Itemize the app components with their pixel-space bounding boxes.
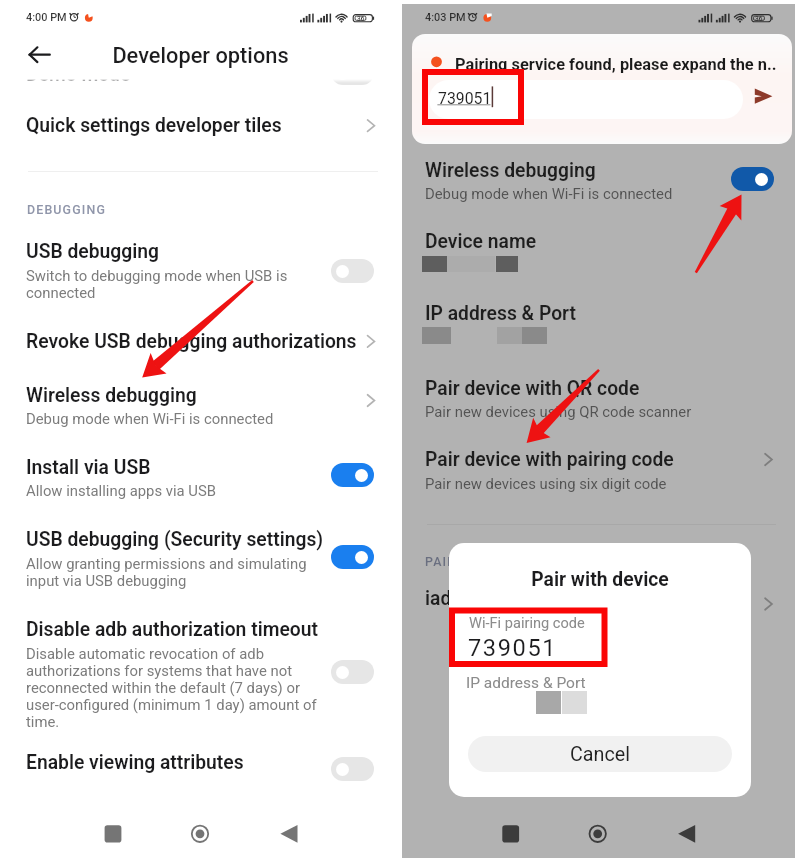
- button[interactable]: IP address & Port: [402, 292, 795, 354]
- button[interactable]: Back: [669, 817, 705, 851]
- button[interactable]: Revoke USB debugging authorizations: [0, 315, 401, 367]
- staticText: Device name: [425, 230, 800, 253]
- button[interactable]: Device name: [402, 220, 795, 282]
- button[interactable]: Quick settings developer tiles: [0, 96, 401, 148]
- staticText: Wireless debugging: [425, 159, 800, 182]
- button[interactable]: Install via USB: [331, 463, 374, 487]
- staticText: authorizations for systems that have not: [26, 662, 427, 679]
- staticText: IP address & Port: [425, 302, 800, 325]
- staticText: Developer options: [0, 43, 401, 69]
- staticText: USB debugging: [26, 240, 427, 263]
- staticText: Wireless debugging: [26, 384, 427, 407]
- staticText: DEBUGGING: [27, 202, 627, 217]
- staticText: Enable viewing attributes: [26, 751, 427, 774]
- button[interactable]: Cancel: [468, 736, 732, 772]
- button[interactable]: Recent apps: [95, 817, 131, 851]
- button[interactable]: Install via USB: [0, 441, 401, 510]
- staticText: Debug mode when Wi-Fi is connected: [425, 185, 800, 202]
- staticText: 739051: [468, 634, 800, 662]
- button[interactable]: Send: [748, 82, 778, 112]
- staticText: 4:00 PM: [26, 11, 626, 24]
- staticText: Wi-Fi pairing code: [469, 614, 800, 631]
- staticText: PAIRED DEVICES: [425, 554, 800, 569]
- button[interactable]: Back: [271, 817, 307, 851]
- staticText: Demo mode: [26, 63, 626, 86]
- staticText: IP address & Port: [466, 674, 800, 692]
- button[interactable]: Wireless debugging: [402, 148, 795, 212]
- button[interactable]: Recent apps: [493, 817, 529, 851]
- button[interactable]: Disable adb authorization timeout: [331, 660, 374, 684]
- staticText: Pairing service found, please expand the…: [455, 55, 800, 74]
- staticText: Debug mode when Wi-Fi is connected: [26, 410, 427, 427]
- staticText: time.: [26, 713, 427, 730]
- button[interactable]: USB debugging security settings: [331, 545, 374, 569]
- staticText: Revoke USB debugging authorizations: [26, 330, 427, 353]
- button[interactable]: Pair device with pairing code: [402, 438, 795, 500]
- staticText: reconnected within the default (7 days) …: [26, 679, 427, 696]
- staticText: Pair device with QR code: [425, 377, 800, 400]
- staticText: Disable automatic revocation of adb: [26, 645, 427, 662]
- staticText: Allow installing apps via USB: [26, 482, 427, 499]
- staticText: user-configured (minimum 1 day) amount o…: [26, 696, 427, 713]
- staticText: 739051: [438, 89, 743, 108]
- staticText: Quick settings developer tiles: [26, 114, 427, 137]
- staticText: Pair with device: [449, 568, 751, 591]
- button[interactable]: Pair device with QR code: [402, 366, 795, 428]
- staticText: Disable adb authorization timeout: [26, 618, 427, 641]
- button[interactable]: Demo mode: [331, 61, 374, 85]
- button[interactable]: Wireless debugging: [731, 167, 774, 191]
- button[interactable]: Disable adb authorization timeout: [0, 603, 401, 731]
- button[interactable]: USB debugging: [331, 259, 374, 283]
- button[interactable]: USB debugging: [0, 228, 401, 306]
- staticText: Pair new devices using six digit code: [425, 475, 800, 492]
- staticText: 36: [357, 15, 800, 23]
- staticText: 4:03 PM: [425, 11, 800, 24]
- button[interactable]: 739051: [429, 80, 743, 119]
- staticText: connected: [26, 284, 427, 301]
- button[interactable]: USB debugging (Security settings): [0, 513, 401, 599]
- button[interactable]: iaduoihw: [402, 575, 795, 627]
- button[interactable]: Home: [580, 817, 616, 851]
- staticText: Pair new devices using QR code scanner: [425, 403, 800, 420]
- button[interactable]: Home: [182, 817, 218, 851]
- staticText: iaduoihw: [425, 587, 800, 610]
- staticText: Pair device with pairing code: [425, 448, 800, 471]
- staticText: Switch to debugging mode when USB is: [26, 267, 427, 284]
- staticText: Allow granting permissions and simulatin…: [26, 555, 427, 572]
- staticText: Install via USB: [26, 456, 427, 479]
- button[interactable]: Enable viewing attributes: [331, 757, 374, 781]
- staticText: input via USB debugging: [26, 572, 427, 589]
- staticText: 36: [755, 15, 800, 23]
- button[interactable]: Enable viewing attributes: [0, 735, 401, 787]
- staticText: Cancel: [468, 743, 732, 766]
- button[interactable]: Wireless debugging: [0, 369, 401, 438]
- button[interactable]: Navigate up: [20, 35, 60, 75]
- staticText: USB debugging (Security settings): [26, 528, 427, 551]
